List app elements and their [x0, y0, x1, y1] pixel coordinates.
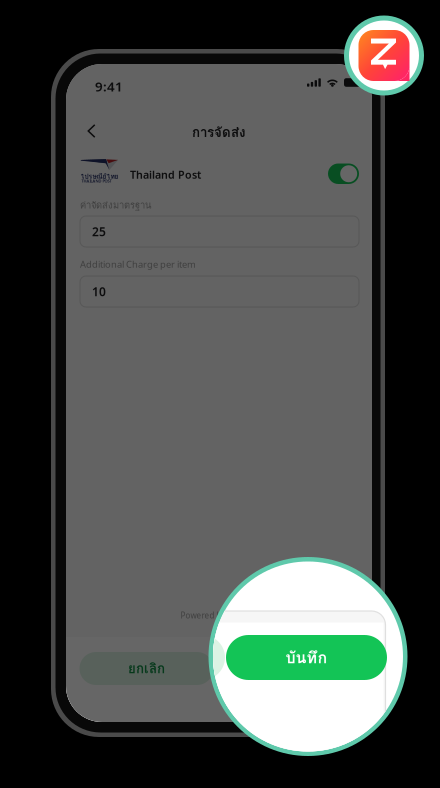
staticText: ค่าจัดส่งมาตรฐาน: [80, 198, 151, 212]
staticText: Additional Charge per item: [80, 258, 196, 270]
staticText: Powered by ZWIZ.AI: [180, 610, 257, 621]
button[interactable]: Thailand Post enabled: [328, 163, 359, 184]
staticText: THAILAND POST: [81, 178, 111, 183]
staticText: Thailand Post: [130, 167, 201, 182]
button[interactable]: บันทึก: [224, 652, 358, 685]
staticText: ยกเลิก: [128, 658, 165, 679]
button[interactable]: ยกเลิก: [79, 652, 213, 685]
staticText: บันทึก: [274, 658, 308, 679]
staticText: 9:41: [95, 77, 123, 95]
staticText: 10: [92, 283, 106, 299]
staticText: 25: [92, 223, 106, 239]
staticText: บันทึก: [285, 645, 327, 670]
staticText: ไปรษณีย์ไทย: [81, 171, 119, 182]
button[interactable]: Back: [78, 118, 104, 144]
staticText: การจัดส่ง: [192, 122, 246, 143]
